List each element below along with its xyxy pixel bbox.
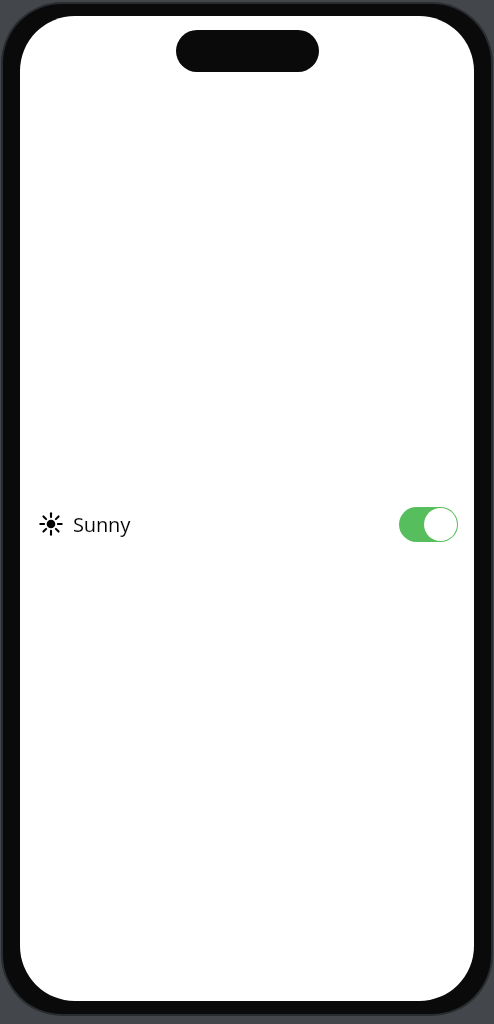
button[interactable]: Sunny [40, 502, 458, 546]
staticText: Sunny [73, 511, 131, 538]
button[interactable] [399, 507, 458, 542]
